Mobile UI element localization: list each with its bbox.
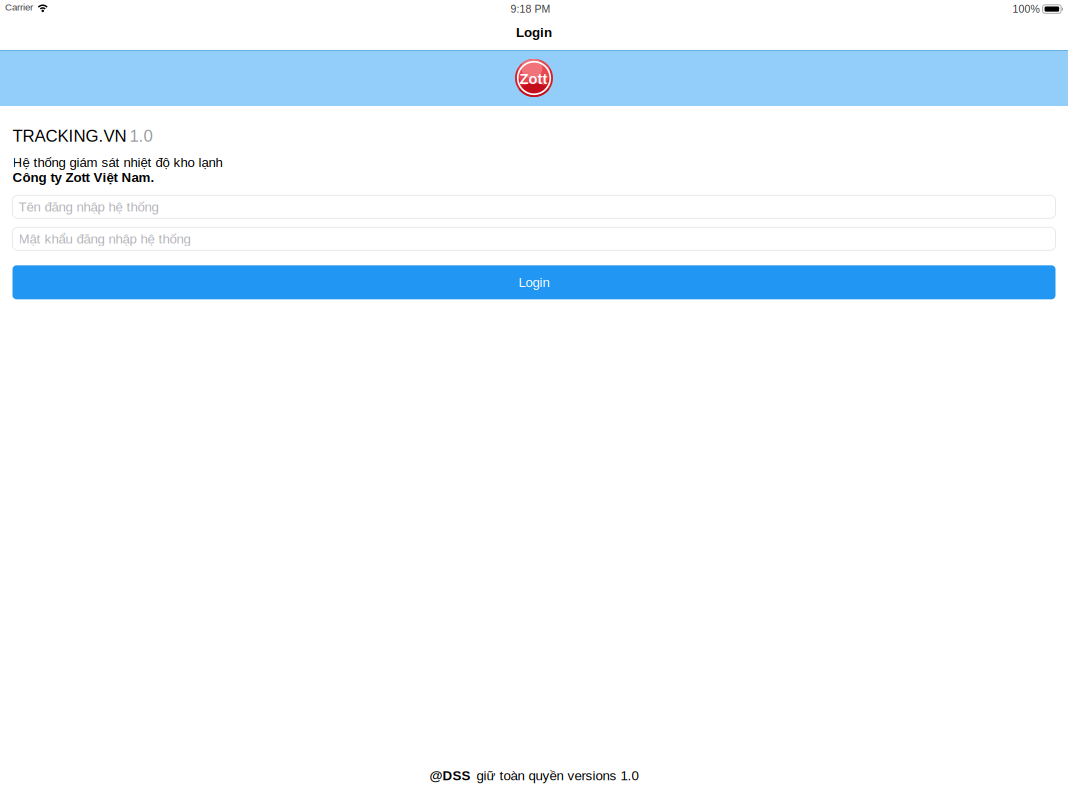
staticText: Zott (519, 71, 547, 87)
button[interactable]: Mật khẩu đăng nhập hệ thống (12, 227, 1055, 250)
staticText: Công ty Zott Việt Nam. (12, 170, 154, 185)
staticText: TRACKING.VN (12, 126, 126, 145)
staticText: Login (518, 275, 549, 290)
staticText: Tên đăng nhập hệ thống (18, 199, 158, 214)
staticText: Hệ thống giám sát nhiệt độ kho lạnh (12, 155, 222, 170)
staticText: Login (516, 25, 552, 40)
staticText: 9:18 PM (511, 3, 551, 15)
staticText: 100% (1013, 3, 1040, 15)
button[interactable]: Login (12, 265, 1055, 299)
button[interactable]: Tên đăng nhập hệ thống (12, 195, 1055, 218)
staticText: giữ toàn quyền versions 1.0 (476, 768, 638, 783)
staticText: Carrier (5, 2, 33, 12)
staticText: @DSS (429, 768, 470, 783)
staticText: Mật khẩu đăng nhập hệ thống (18, 231, 190, 246)
staticText: 1.0 (129, 126, 152, 145)
